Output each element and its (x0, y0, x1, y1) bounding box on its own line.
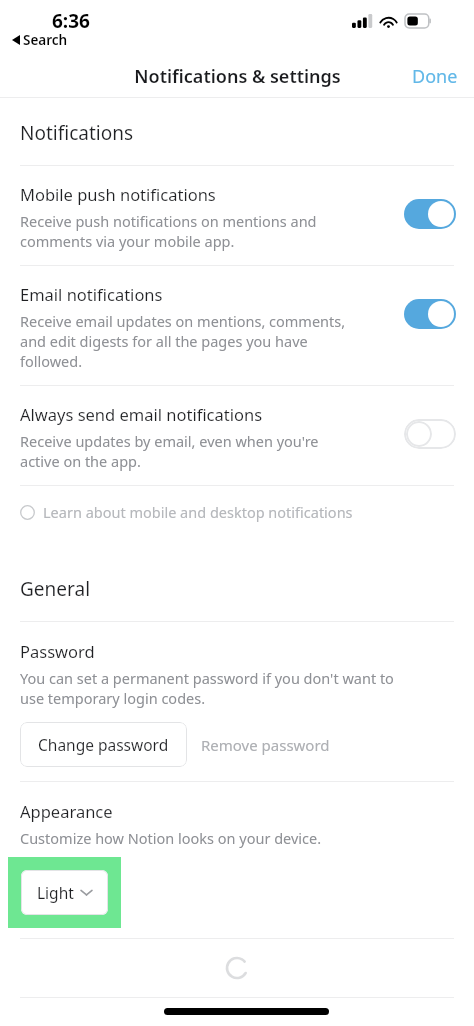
staticText: Learn about mobile and desktop notificat… (43, 502, 353, 522)
staticText: Appearance (20, 800, 113, 822)
staticText: Notifications (20, 120, 134, 146)
button[interactable]: Mobile push notifications (0, 166, 474, 265)
button[interactable]: Change password (20, 722, 187, 767)
staticText: Change password (38, 734, 169, 755)
staticText: Notifications & settings (134, 64, 341, 89)
button[interactable]: Always send email notifications (0, 386, 474, 485)
staticText: Receive email updates on mentions, comme… (20, 311, 346, 331)
button[interactable]: Learn about mobile and desktop notificat… (0, 486, 474, 538)
staticText: Light (37, 882, 74, 903)
staticText: Done (412, 64, 458, 89)
staticText: Email notifications (20, 283, 163, 305)
staticText: followed. (20, 351, 83, 371)
staticText: Customize how Notion looks on your devic… (20, 828, 322, 848)
staticText: You can set a permanent password if you … (20, 668, 394, 688)
button[interactable]: Done (396, 58, 474, 95)
staticText: use temporary login codes. (20, 688, 206, 708)
button[interactable]: Light (21, 870, 108, 915)
staticText: Mobile push notifications (20, 183, 216, 205)
button[interactable]: Toggle on (404, 199, 456, 229)
staticText: active on the app. (20, 451, 141, 471)
staticText: Remove password (201, 735, 330, 755)
button[interactable]: Search (12, 31, 68, 49)
staticText: Password (20, 640, 95, 662)
staticText: 6:36 (52, 8, 90, 34)
staticText: comments via your mobile app. (20, 231, 235, 251)
button[interactable]: Remove password (187, 725, 344, 765)
staticText: and edit digests for all the pages you h… (20, 331, 308, 351)
staticText: Receive updates by email, even when you'… (20, 431, 319, 451)
button[interactable]: Toggle off (404, 419, 456, 449)
staticText: Receive push notifications on mentions a… (20, 211, 317, 231)
staticText: Always send email notifications (20, 403, 263, 425)
button[interactable]: Toggle on (404, 299, 456, 329)
staticText: General (20, 576, 91, 602)
staticText: Search (23, 31, 68, 49)
button[interactable]: Email notifications (0, 266, 474, 385)
